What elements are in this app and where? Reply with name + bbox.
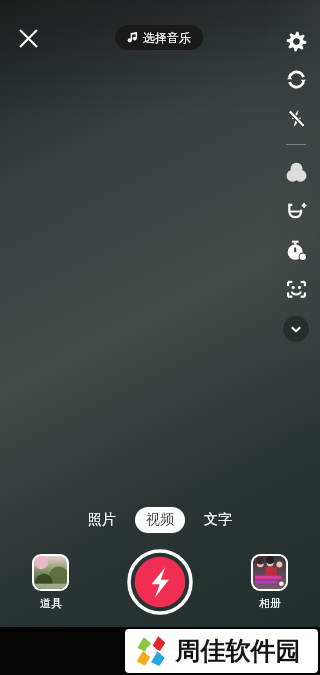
button[interactable]: 选择音乐 <box>115 25 203 50</box>
staticText: 分段拍 <box>141 643 180 659</box>
button[interactable]: Filters <box>280 156 312 188</box>
staticText: 照片 <box>88 511 116 529</box>
staticText: 相册 <box>259 596 281 610</box>
button[interactable]: Settings <box>280 25 312 57</box>
button[interactable]: 道具 <box>30 552 71 612</box>
button[interactable]: 文字 <box>193 507 243 533</box>
button[interactable]: Timer <box>280 234 312 266</box>
button[interactable]: 相册 <box>249 552 290 612</box>
staticText: 周佳软件园 <box>175 636 300 667</box>
staticText: 道具 <box>40 596 62 610</box>
button[interactable]: Face detect <box>280 273 312 305</box>
staticText: 文字 <box>204 511 232 529</box>
button[interactable]: Flip camera <box>280 63 312 95</box>
button[interactable]: 照片 <box>77 507 127 533</box>
button[interactable]: Collapse tools <box>283 316 309 342</box>
button[interactable]: Flash off <box>280 102 312 134</box>
button[interactable]: 视频 <box>135 507 185 533</box>
staticText: 视频 <box>146 511 174 529</box>
staticText: 选择音乐 <box>143 30 191 45</box>
button[interactable]: Beauty <box>280 195 312 227</box>
button[interactable]: Close <box>14 24 42 52</box>
button[interactable]: Record <box>129 551 191 613</box>
